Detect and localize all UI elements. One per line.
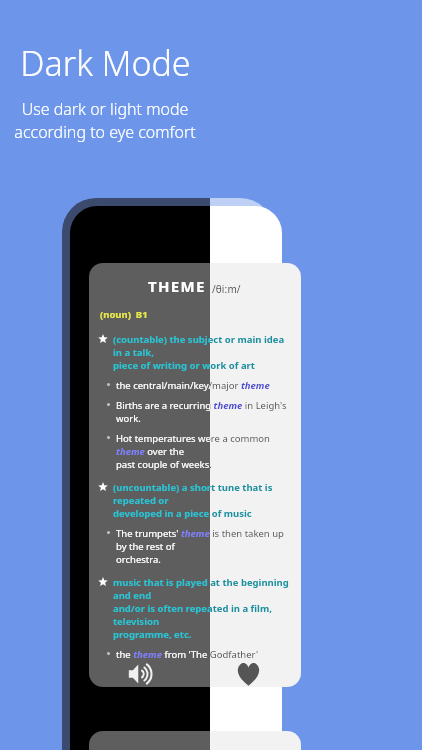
staticText: the theme from 'The Godfather' [210,648,259,661]
staticText: The trumpets' theme is then taken up by … [210,527,291,566]
staticText: Births are a recurring theme in Leigh's … [116,399,210,425]
staticText: (countable) the subject or main idea in … [210,333,291,372]
staticText: the central/main/key/major theme [210,379,270,392]
staticText: Hot temperatures were a common theme ove… [116,432,210,471]
staticText: Births are a recurring theme in Leigh's … [210,399,291,425]
button[interactable]: THEME [210,263,301,687]
staticText: THEME [148,276,206,296]
staticText: The trumpets' theme is then taken up by … [116,527,210,566]
staticText: music that is played at the beginning an… [113,576,210,641]
staticText: Use dark or light mode according to eye … [14,98,196,143]
button[interactable]: Play pronunciation [89,661,194,687]
staticText: the theme from 'The Godfather' [116,648,210,661]
button[interactable]: Add to favourites [210,661,301,687]
staticText: (countable) the subject or main idea in … [113,333,210,372]
staticText: Hot temperatures were a common theme ove… [210,432,291,471]
staticText: /θiːm/ [212,282,241,296]
staticText: Dark Mode [20,40,191,86]
button[interactable]: THEME [89,263,210,687]
staticText: (uncountable) a short tune that is repea… [113,481,210,520]
staticText: the central/main/key/major theme [116,379,210,392]
staticText: (uncountable) a short tune that is repea… [210,481,291,520]
staticText: music that is played at the beginning an… [210,576,291,641]
staticText: (noun) B1 [100,308,148,321]
